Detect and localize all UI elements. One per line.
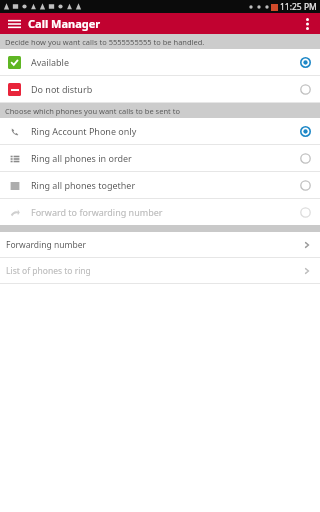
staticText: Choose which phones you want calls to be…	[5, 106, 180, 116]
staticText: Forward to forwarding number	[31, 206, 300, 218]
button[interactable]: Ring all phones in order	[0, 145, 320, 171]
button[interactable]: Available	[0, 49, 320, 75]
button[interactable]: More options	[294, 13, 320, 34]
staticText: Available	[31, 56, 300, 68]
staticText: Ring all phones in order	[31, 152, 300, 164]
staticText: Do not disturb	[31, 83, 300, 95]
staticText: Decide how you want calls to 5555555555 …	[5, 37, 205, 47]
button[interactable]: Do not disturb	[0, 76, 320, 102]
button[interactable]: Open navigation menu	[0, 13, 28, 34]
staticText: 11:25 PM	[280, 1, 317, 13]
staticText: Ring Account Phone only	[31, 125, 300, 137]
button[interactable]: List of phones to ring	[0, 258, 320, 283]
button[interactable]: Ring Account Phone only	[0, 118, 320, 144]
staticText: List of phones to ring	[6, 265, 303, 277]
staticText: Ring all phones together	[31, 179, 300, 191]
button[interactable]: Forward to forwarding number	[0, 199, 320, 225]
button[interactable]: Forwarding number	[0, 232, 320, 257]
button[interactable]: Ring all phones together	[0, 172, 320, 198]
staticText: Forwarding number	[6, 239, 303, 251]
staticText: Call Manager	[28, 16, 101, 31]
